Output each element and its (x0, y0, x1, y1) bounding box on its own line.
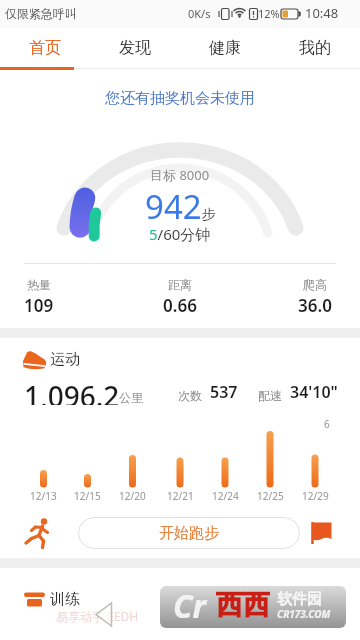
staticText: 0.66 (163, 294, 197, 316)
staticText: 热量 (27, 277, 51, 292)
staticText: 12/13 (30, 489, 57, 502)
button[interactable]: 训练 (50, 590, 130, 609)
button[interactable]: 首页 (0, 28, 90, 67)
button[interactable] (51, 134, 309, 250)
staticText: 5/60分钟 (149, 224, 211, 244)
staticText: Cr (173, 584, 207, 628)
staticText: 我的 (299, 38, 331, 58)
staticText: 0K/s (188, 6, 211, 21)
staticText: 开始跑步 (159, 524, 219, 543)
staticText: 您还有抽奖机会未使用 (105, 89, 255, 108)
staticText: 爬高 (303, 277, 327, 292)
staticText: 易享动手·EEDH (56, 608, 139, 624)
button[interactable]: 开始跑步 (78, 517, 300, 549)
staticText: 配速 (258, 388, 282, 403)
staticText: 12/20 (119, 489, 146, 502)
staticText: 12/25 (257, 489, 284, 502)
staticText: CR173.COM (277, 607, 331, 621)
staticText: 34'10" (290, 381, 338, 403)
staticText: 12/24 (212, 489, 239, 502)
staticText: 36.0 (298, 294, 332, 316)
staticText: 12/21 (167, 489, 194, 502)
staticText: 12% (258, 6, 280, 21)
staticText: 距离 (168, 277, 192, 292)
button[interactable]: 健康 (180, 28, 270, 67)
button[interactable]: 发现 (90, 28, 180, 67)
staticText: 训练 (50, 590, 80, 609)
staticText: 发现 (119, 38, 151, 58)
staticText: 12/15 (74, 489, 101, 502)
staticText: 109 (24, 294, 54, 316)
staticText: 软件园 (277, 590, 322, 608)
staticText: 目标 8000 (150, 166, 210, 184)
staticText: 健康 (209, 38, 241, 58)
button[interactable] (24, 514, 52, 552)
button[interactable]: 我的 (270, 28, 360, 67)
button[interactable]: 您还有抽奖机会未使用 (0, 70, 360, 126)
staticText: 12/29 (302, 489, 329, 502)
staticText: 10:48 (305, 4, 339, 22)
staticText: 942步 (145, 184, 216, 224)
staticText: 运动 (50, 350, 80, 369)
button[interactable]: 运动 (50, 350, 130, 369)
staticText: 6 (324, 417, 330, 430)
staticText: 首页 (29, 38, 61, 58)
staticText: 次数 (178, 388, 202, 403)
staticText: 537 (210, 381, 238, 403)
staticText: 仅限紧急呼叫 (5, 6, 77, 21)
staticText: 1,096.2 (24, 377, 120, 405)
staticText: 西西 (216, 588, 270, 620)
staticText: 公里 (119, 390, 143, 405)
button[interactable] (306, 516, 340, 548)
